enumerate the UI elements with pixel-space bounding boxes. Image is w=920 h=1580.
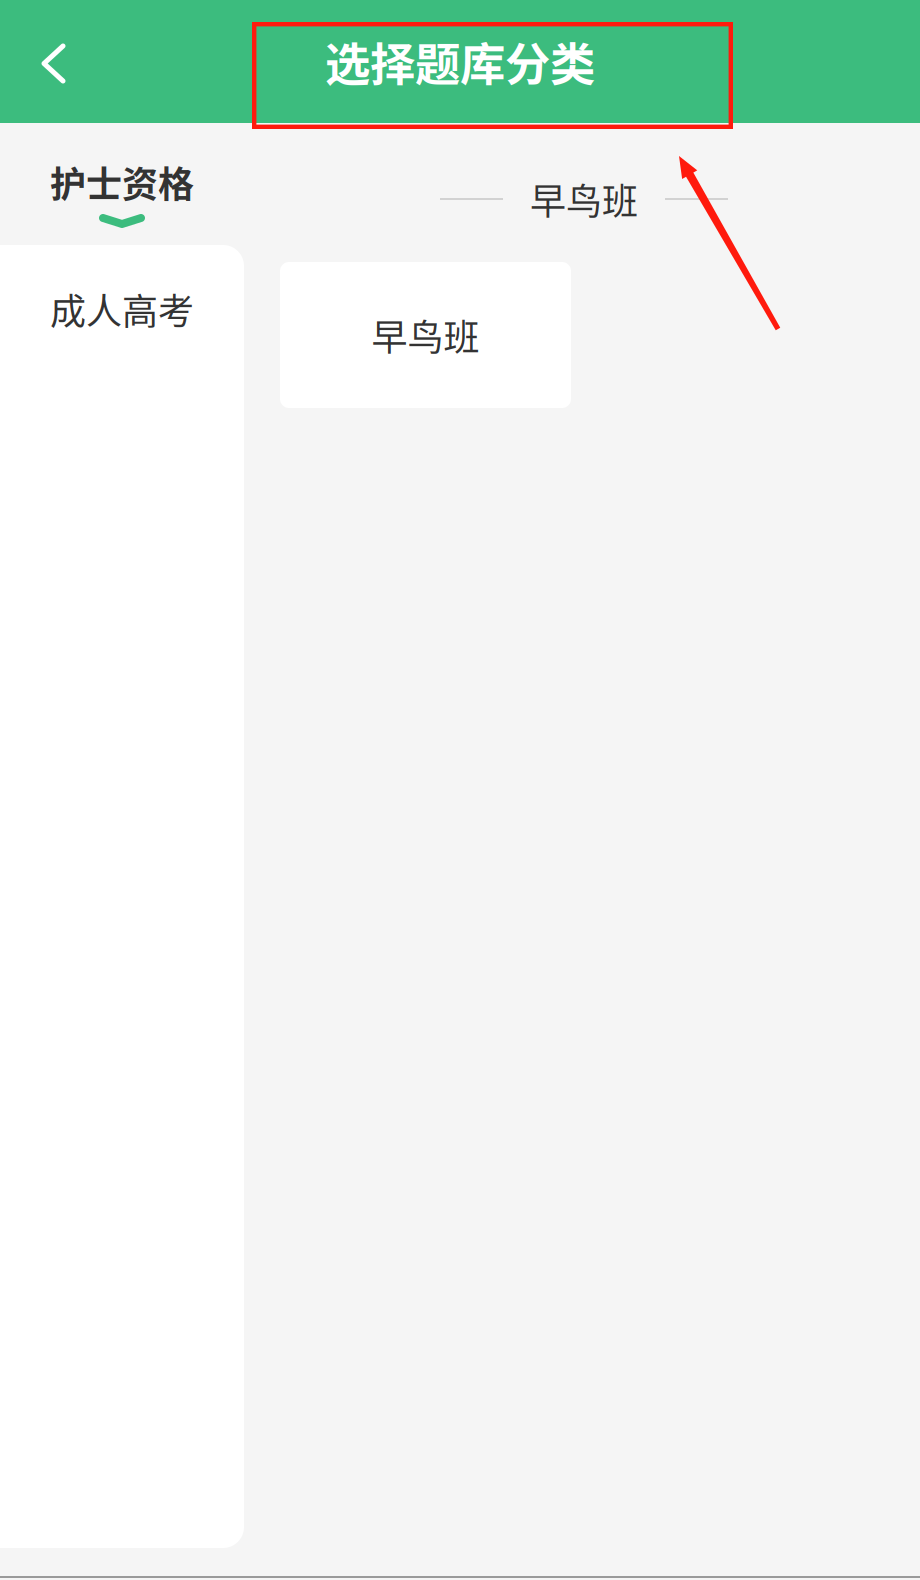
button[interactable]: 成人高考 — [0, 259, 244, 359]
button[interactable]: 早鸟班 — [280, 262, 571, 408]
staticText: 成人高考 — [50, 283, 194, 335]
button[interactable]: 选择题库分类 — [0, 0, 920, 123]
staticText: 护士资格 — [50, 156, 194, 208]
staticText: 早鸟班 — [530, 173, 638, 225]
staticText: 选择题库分类 — [325, 29, 595, 94]
button[interactable]: Back — [0, 0, 105, 123]
staticText: 早鸟班 — [371, 309, 479, 361]
button[interactable]: 护士资格 — [0, 159, 244, 255]
